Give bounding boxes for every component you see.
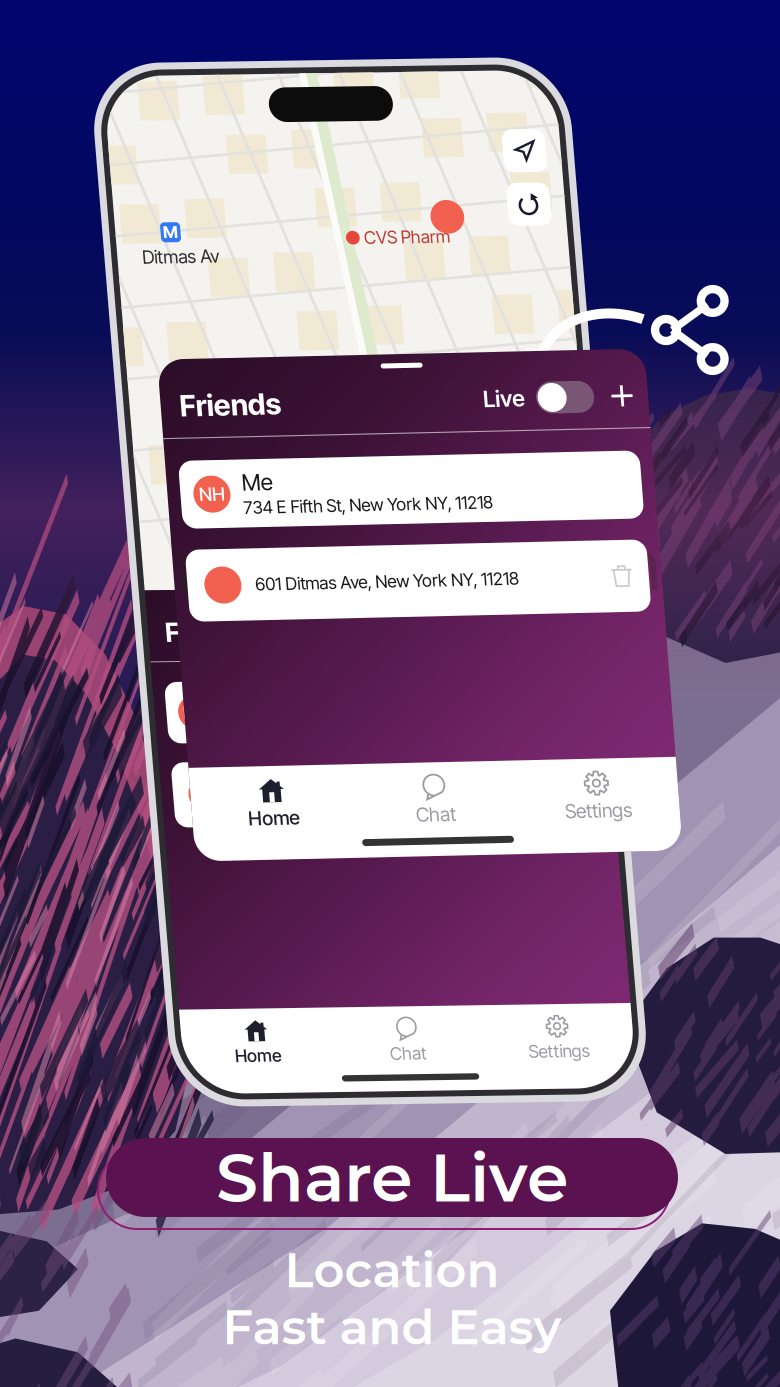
staticText: M (192, 219, 207, 240)
staticText: 734 E Fifth St, New York NY, 11218 (212, 713, 444, 732)
staticText: Friends (195, 383, 297, 418)
button[interactable]: Chat (339, 774, 501, 826)
staticText: Friends (161, 613, 252, 645)
button[interactable]: Settings (445, 1017, 596, 1064)
staticText: Me (251, 465, 282, 492)
staticText: NH (207, 478, 233, 501)
button[interactable]: NH (189, 456, 651, 524)
staticText: Chat (400, 803, 440, 826)
button[interactable]: Home (176, 774, 339, 826)
staticText: Home (232, 803, 283, 826)
button[interactable]: Center on my location (538, 132, 581, 175)
button[interactable]: Settings (501, 774, 664, 826)
staticText: Share Live (216, 1137, 568, 1218)
button[interactable]: Home (144, 1017, 295, 1064)
staticText: 734 E Fifth St, New York NY, 11218 (251, 493, 501, 514)
staticText: Home (196, 1043, 242, 1064)
staticText: 601 Ditmas Ave, New York NY, 11218 (217, 782, 462, 801)
button[interactable]: NH (156, 679, 584, 740)
button[interactable]: Refresh (538, 185, 581, 229)
button[interactable]: 601 Ditmas Ave, New York NY, 11218 (156, 759, 584, 824)
button[interactable]: Add friend (610, 384, 649, 418)
staticText: Live (499, 387, 541, 414)
staticText: Ditmas Av (169, 243, 246, 265)
staticText: Fast and Easy (222, 1298, 561, 1356)
staticText: UpdateStar.com (177, 528, 662, 612)
button[interactable]: Chat (295, 1017, 445, 1064)
staticText: Location (284, 1241, 499, 1299)
staticText: NH (172, 699, 196, 720)
button[interactable]: Share Live (106, 1138, 678, 1217)
button[interactable]: 601 Ditmas Ave, New York NY, 11218 (189, 545, 651, 617)
staticText: Settings (490, 1043, 551, 1064)
staticText: CVS Pharm (392, 227, 478, 248)
staticText: Settings (549, 803, 616, 826)
button[interactable]: Live location toggle (552, 385, 610, 417)
staticText: UpdateStar.com (152, 769, 588, 845)
staticText: 601 Ditmas Ave, New York NY, 11218 (257, 570, 521, 591)
